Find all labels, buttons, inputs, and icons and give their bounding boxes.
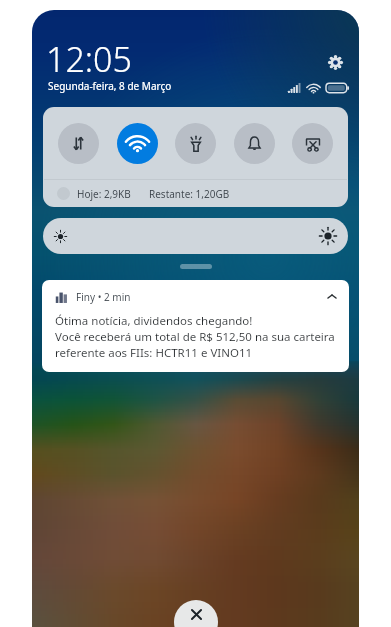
staticText: Hoje: 2,9KB [77,187,131,201]
staticText: Ótima notícia, dividendos chegando! [55,313,253,329]
button[interactable]: Flashlight [175,123,216,164]
staticText: 12:05 [46,36,132,82]
button[interactable]: Wi-Fi [117,123,158,164]
button[interactable]: Settings [322,49,348,75]
staticText: Finy • 2 min [76,290,131,304]
button[interactable]: Collapse notification [323,288,341,306]
button[interactable]: Brightness [43,218,348,254]
button[interactable]: Mobile data [58,123,99,164]
staticText: Você receberá um total de R$ 512,50 na s… [55,329,335,345]
button[interactable]: Do not disturb [234,123,275,164]
staticText: Restante: 1,20GB [149,187,230,201]
button[interactable]: Clear all notifications [174,600,218,627]
button[interactable]: Finy • 2 min [42,280,349,372]
button[interactable]: Screenshot [292,123,333,164]
staticText: referente aos FIIs: HCTR11 e VINO11 [55,345,253,361]
staticText: Segunda-feira, 8 de Março [48,79,172,93]
